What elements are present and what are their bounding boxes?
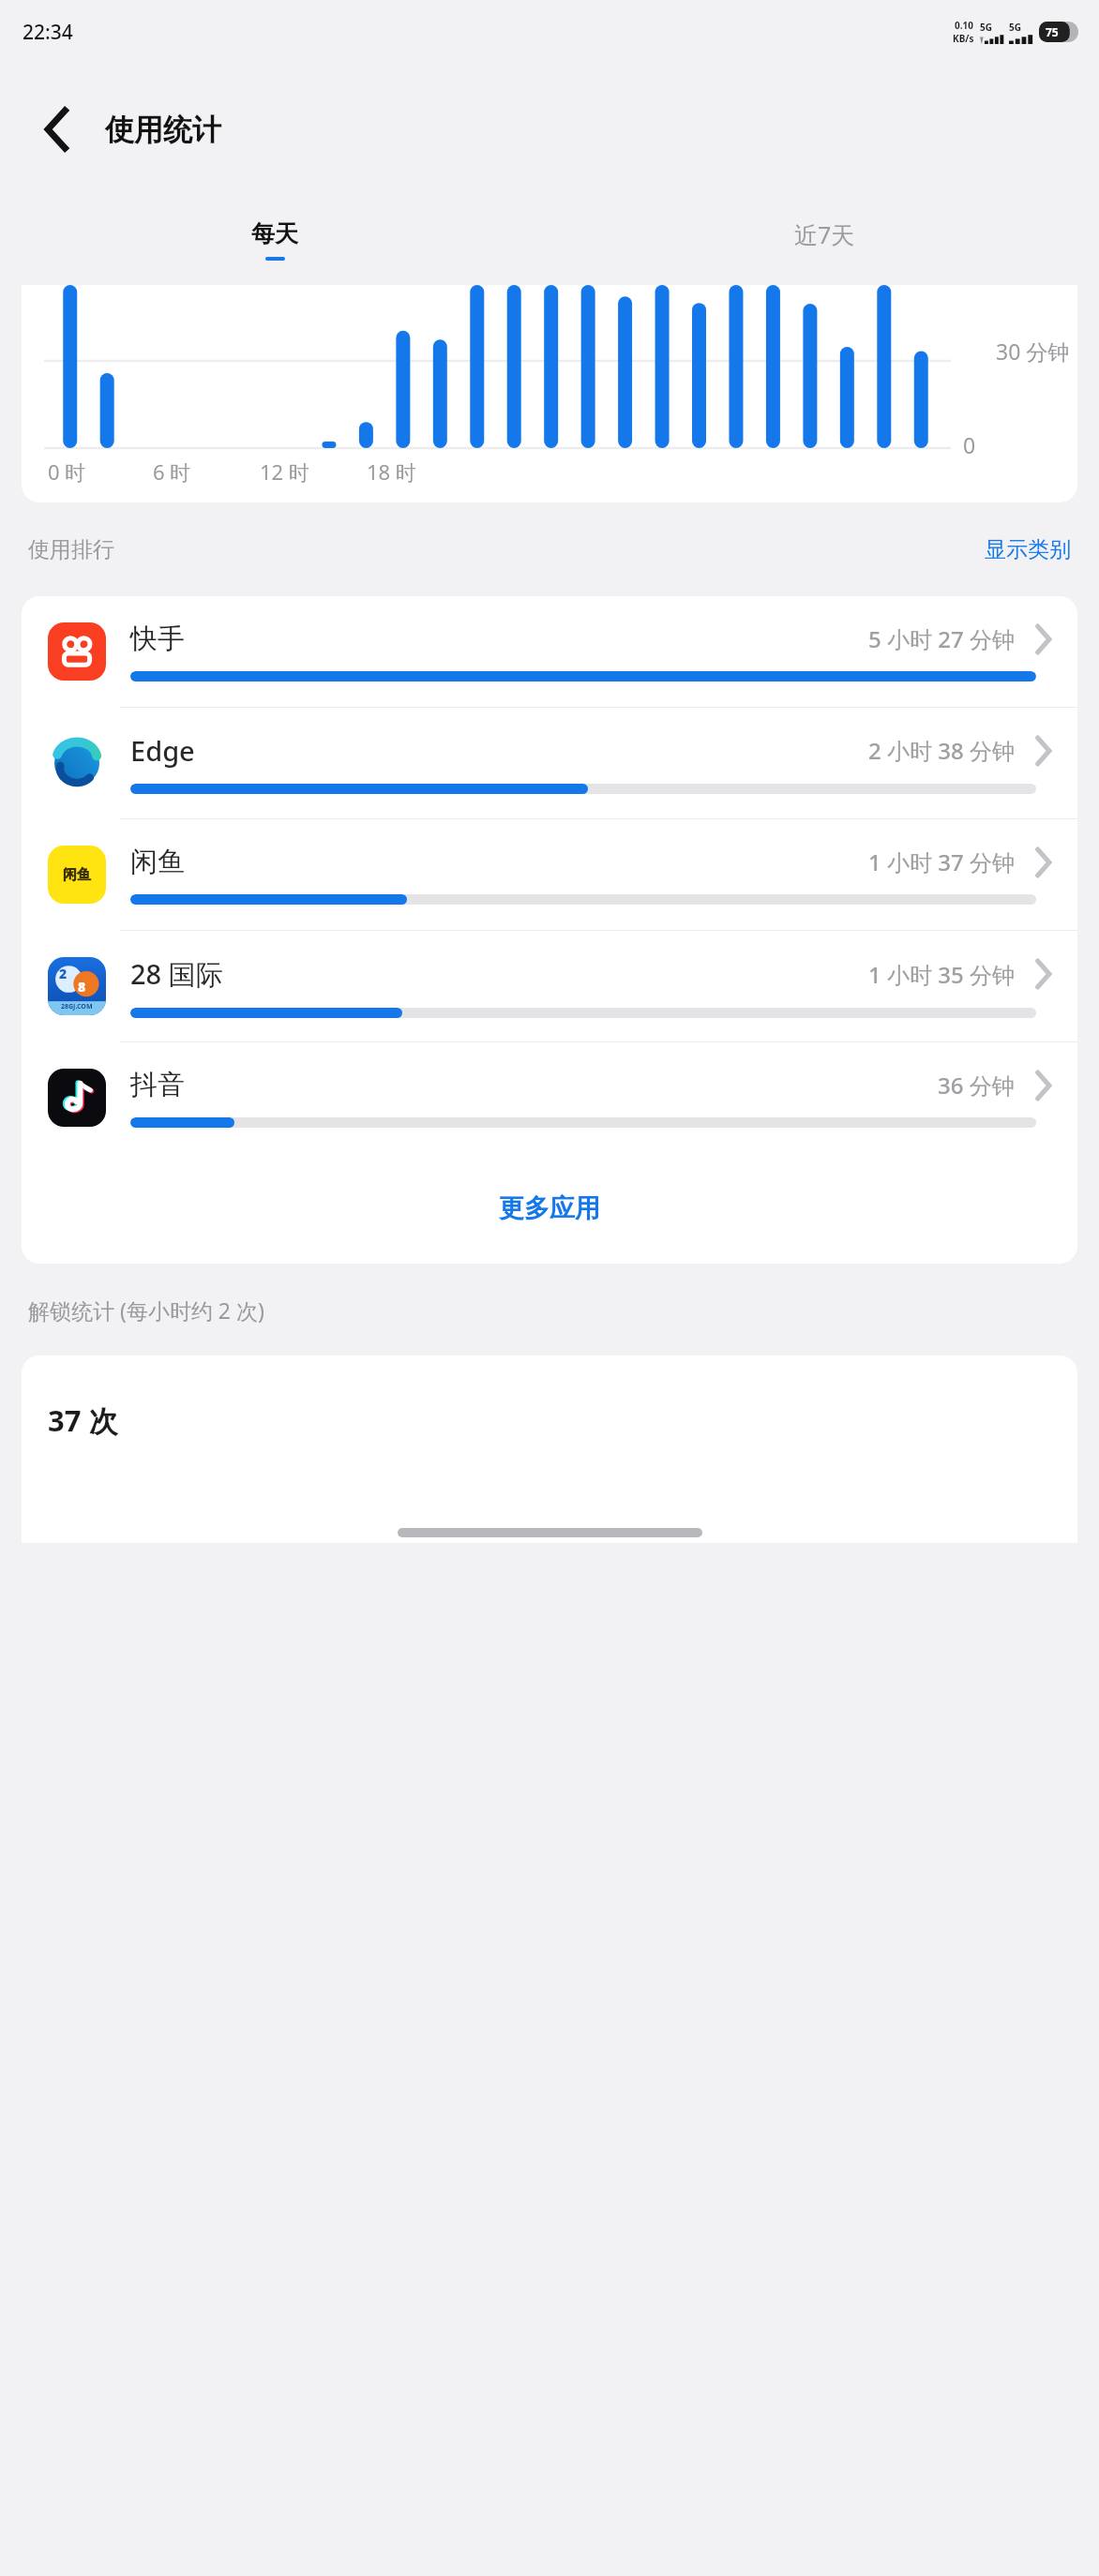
staticText: 75 <box>1046 24 1059 39</box>
staticText: 18 时 <box>367 457 416 486</box>
staticText: 6 时 <box>153 457 191 486</box>
staticText: 0 <box>963 430 976 459</box>
staticText: 闲鱼 <box>63 866 91 884</box>
button[interactable]: 近7天 <box>549 195 1099 285</box>
staticText: 28 国际 <box>130 955 223 993</box>
staticText: 30 分钟 <box>996 337 1070 366</box>
staticText: 37 次 <box>48 1400 118 1440</box>
staticText: 显示类别 <box>985 536 1071 563</box>
staticText: 更多应用 <box>499 1192 600 1224</box>
staticText: 抖音 <box>130 1068 185 1102</box>
staticText: 近7天 <box>794 218 855 250</box>
staticText: 0.10 <box>955 19 973 32</box>
button[interactable]: Edge <box>22 708 1077 818</box>
staticText: Edge <box>130 732 195 769</box>
staticText: KB/s <box>953 32 974 45</box>
staticText: 28GJ.COM <box>61 1002 93 1011</box>
button[interactable]: 抖音 <box>22 1042 1077 1153</box>
staticText: 快手 <box>130 622 185 656</box>
button[interactable]: 快手 <box>22 596 1077 707</box>
staticText: 每天 <box>251 219 298 248</box>
staticText: 5G <box>980 21 992 34</box>
staticText: 5G <box>1009 21 1021 34</box>
staticText: 12 时 <box>260 457 309 486</box>
staticText: 使用统计 <box>105 112 221 148</box>
button[interactable]: 闲鱼 <box>22 819 1077 930</box>
button[interactable]: 2 <box>22 931 1077 1041</box>
staticText: 22:34 <box>23 19 73 46</box>
button[interactable]: 每天 <box>0 195 549 285</box>
button[interactable]: 显示类别 <box>985 536 1071 563</box>
staticText: 2 <box>59 965 68 982</box>
staticText: 解锁统计 (每小时约 2 次) <box>28 1295 264 1325</box>
button[interactable]: 更多应用 <box>22 1153 1077 1264</box>
button[interactable]: Back <box>28 100 86 158</box>
staticText: 2 小时 38 分钟 <box>868 735 1015 766</box>
staticText: 使用排行 <box>28 536 114 563</box>
staticText: 闲鱼 <box>130 845 185 879</box>
staticText: 1 小时 37 分钟 <box>868 846 1015 877</box>
staticText: 8 <box>78 978 86 996</box>
staticText: 5 小时 27 分钟 <box>868 623 1015 654</box>
staticText: 1 小时 35 分钟 <box>868 959 1015 990</box>
staticText: 36 分钟 <box>938 1070 1015 1101</box>
staticText: 0 时 <box>48 457 86 486</box>
